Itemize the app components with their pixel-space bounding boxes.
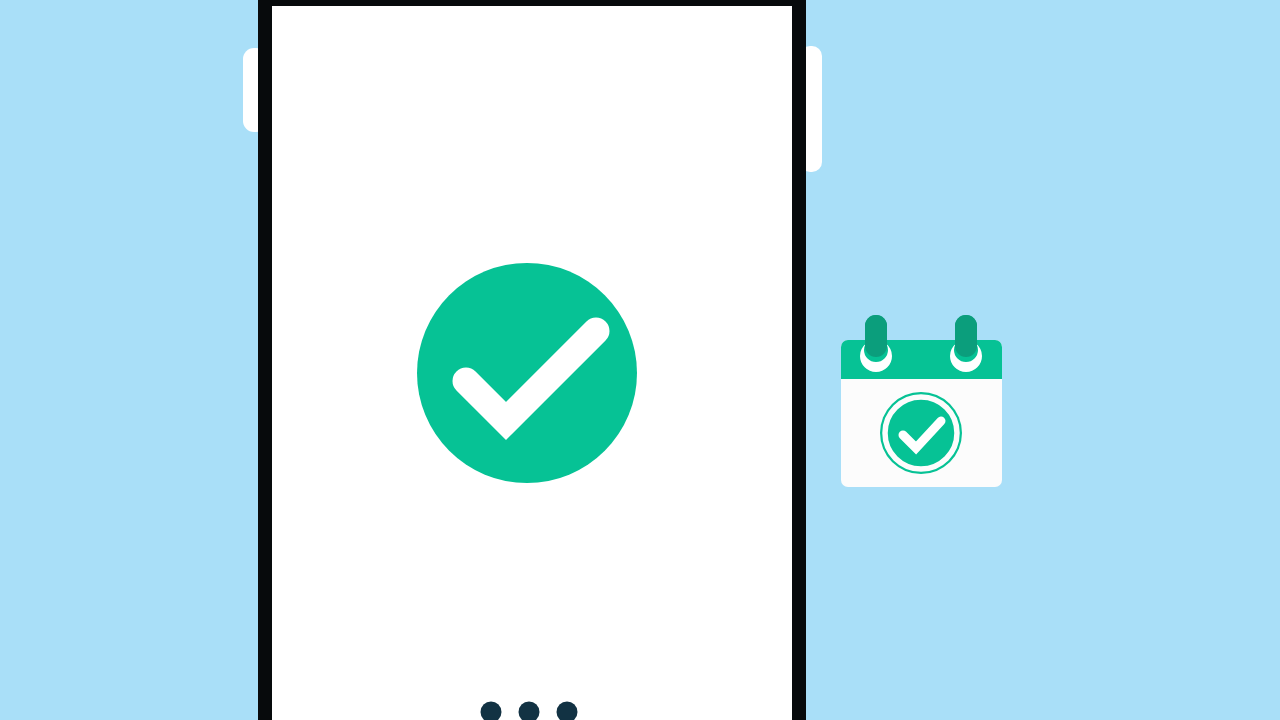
button[interactable]: Phone showing success confirmation bbox=[0, 0, 1280, 720]
